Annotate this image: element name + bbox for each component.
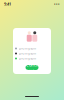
button[interactable]: Continue xyxy=(25,65,38,70)
staticText: Lorem ipsum xyxy=(18,47,35,50)
staticText: Continue xyxy=(26,62,38,73)
staticText: Lorem ipsum xyxy=(18,57,35,60)
staticText: ••• xyxy=(54,1,60,7)
staticText: 9:41 xyxy=(4,1,11,7)
staticText: Lorem ipsum xyxy=(18,52,35,55)
